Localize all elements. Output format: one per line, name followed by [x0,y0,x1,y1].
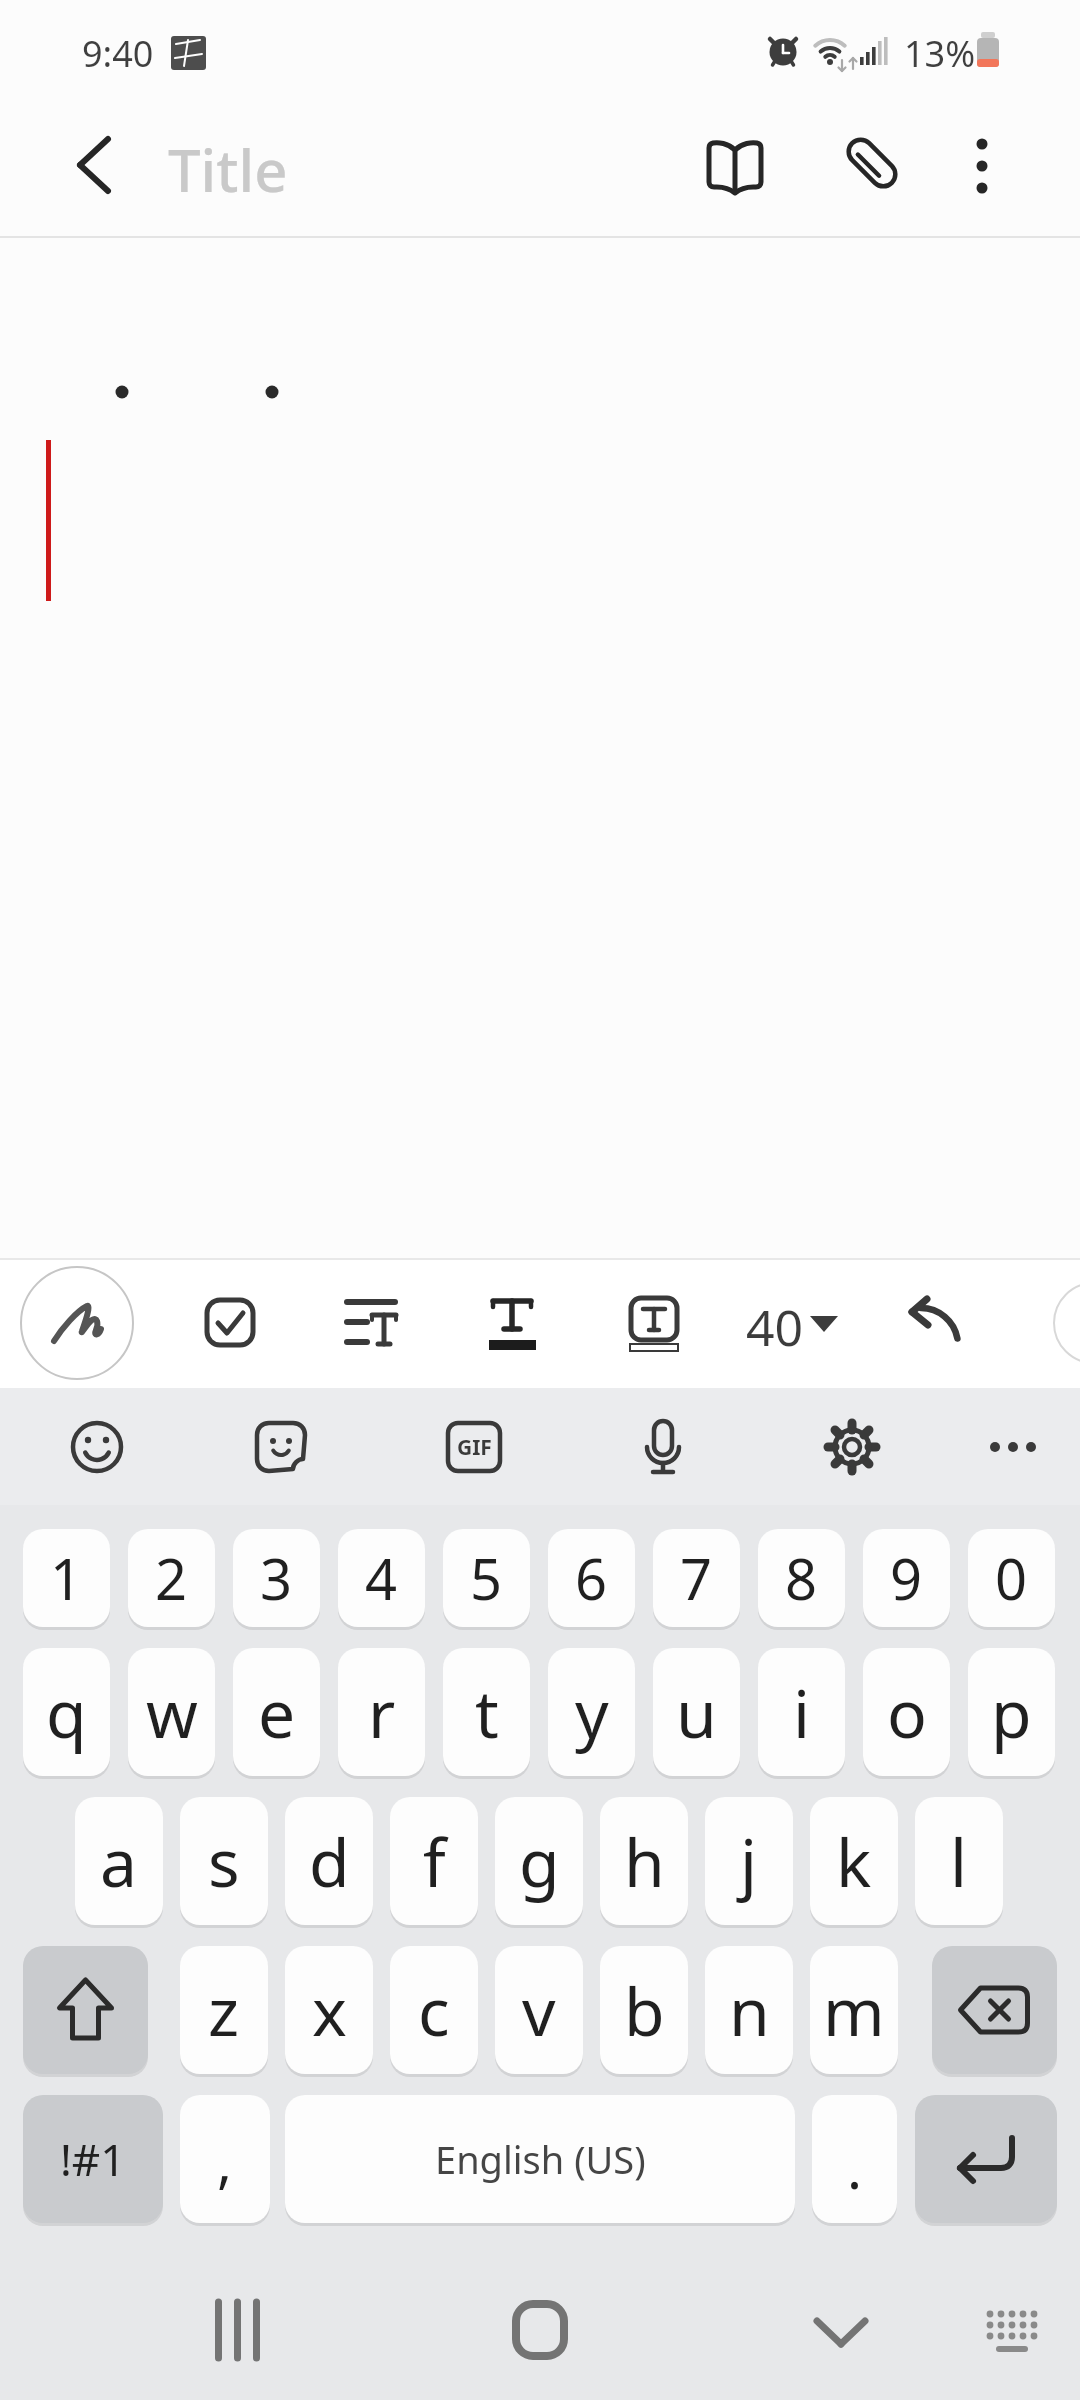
button[interactable]: 3 [233,1529,320,1627]
staticText: 7 [680,1540,713,1616]
button[interactable]: 4 [338,1529,425,1627]
button[interactable]: o [863,1648,950,1776]
staticText: 4 [365,1540,398,1616]
button[interactable] [932,1946,1057,2074]
button[interactable]: 8 [758,1529,845,1627]
button[interactable]: h [600,1797,688,1925]
button[interactable] [480,1287,552,1359]
button[interactable]: z [180,1946,268,2074]
staticText: n [729,1965,770,2055]
staticText: 13% [904,29,976,78]
staticText: 3 [260,1540,293,1616]
button[interactable] [195,1287,267,1359]
button[interactable] [55,130,130,205]
button[interactable] [965,2290,1055,2370]
button[interactable] [244,1410,318,1484]
staticText: 9 [890,1540,923,1616]
button[interactable] [700,130,772,202]
button[interactable]: Title [168,130,488,198]
button[interactable] [60,1410,134,1484]
button[interactable] [795,2290,885,2370]
button[interactable]: k [810,1797,898,1925]
button[interactable]: d [285,1797,373,1925]
button[interactable]: m [810,1946,898,2074]
button[interactable]: 5 [443,1529,530,1627]
button[interactable]: g [495,1797,583,1925]
staticText: Title [168,130,288,198]
staticText: k [836,1816,872,1906]
staticText: 9:40 [82,29,154,78]
button[interactable] [915,2095,1057,2223]
staticText: 1 [50,1540,83,1616]
button[interactable]: f [390,1797,478,1925]
button[interactable]: 40 [735,1293,815,1353]
button[interactable]: v [495,1946,583,2074]
staticText: y [575,1667,609,1757]
staticText: x [312,1965,347,2055]
button[interactable]: 7 [653,1529,740,1627]
staticText: b [624,1965,665,2055]
button[interactable] [950,130,1014,202]
button[interactable]: 1 [23,1529,110,1627]
button[interactable]: l [915,1797,1003,1925]
button[interactable]: s [180,1797,268,1925]
staticText: z [208,1965,240,2055]
staticText: . [847,2129,863,2205]
button[interactable]: 9 [863,1529,950,1627]
button[interactable]: r [338,1648,425,1776]
staticText: 40 [746,1293,804,1353]
staticText: d [309,1816,350,1906]
staticText: English (US) [435,2133,646,2185]
staticText: o [887,1667,927,1757]
staticText: 5 [470,1540,503,1616]
button[interactable]: y [548,1648,635,1776]
button[interactable]: i [758,1648,845,1776]
button[interactable] [840,128,910,198]
button[interactable] [620,1287,692,1359]
staticText: u [676,1667,717,1757]
button[interactable] [437,1410,511,1484]
button[interactable]: 0 [968,1529,1055,1627]
button[interactable] [976,1410,1050,1484]
button[interactable]: p [968,1648,1055,1776]
staticText: !#1 [60,2129,126,2189]
button[interactable]: !#1 [23,2095,163,2223]
button[interactable] [626,1410,700,1484]
button[interactable] [495,2290,585,2370]
button[interactable]: a [75,1797,163,1925]
button[interactable]: English (US) [285,2095,795,2223]
button[interactable]: t [443,1648,530,1776]
staticText: q [46,1667,87,1757]
button[interactable]: c [390,1946,478,2074]
staticText: e [258,1667,296,1757]
staticText: s [208,1816,240,1906]
staticText: m [823,1965,885,2055]
button[interactable] [900,1287,972,1359]
button[interactable]: . [812,2095,897,2223]
button[interactable]: u [653,1648,740,1776]
button[interactable] [190,2290,280,2370]
button[interactable]: n [705,1946,793,2074]
staticText: v [522,1965,556,2055]
staticText: 8 [785,1540,818,1616]
staticText: h [624,1816,665,1906]
staticText: w [146,1667,198,1757]
staticText: l [950,1816,968,1906]
button[interactable]: , [180,2095,270,2223]
staticText: 6 [575,1540,608,1616]
button[interactable]: b [600,1946,688,2074]
staticText: t [475,1667,499,1757]
staticText: a [100,1816,138,1906]
button[interactable]: j [705,1797,793,1925]
button[interactable]: e [233,1648,320,1776]
button[interactable] [815,1410,889,1484]
button[interactable]: 2 [128,1529,215,1627]
button[interactable]: q [23,1648,110,1776]
button[interactable] [21,1266,135,1380]
button[interactable]: 6 [548,1529,635,1627]
staticText: 2 [155,1540,188,1616]
button[interactable]: x [285,1946,373,2074]
button[interactable]: w [128,1648,215,1776]
button[interactable] [335,1287,407,1359]
button[interactable] [23,1946,148,2074]
